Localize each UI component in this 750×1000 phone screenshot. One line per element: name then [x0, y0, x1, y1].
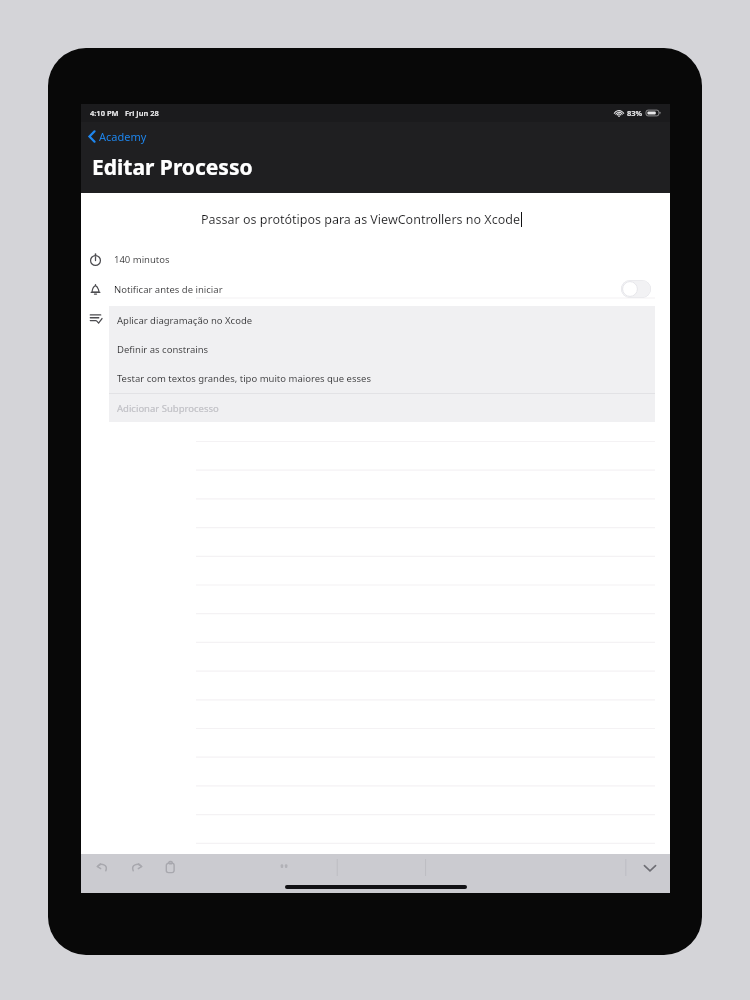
staticText: 83%	[627, 108, 643, 118]
button[interactable]: Definir as constrains	[109, 335, 655, 364]
button[interactable]: Notify before start toggle	[621, 280, 651, 298]
staticText: Editar Processo	[92, 153, 253, 182]
staticText: Aplicar diagramação no Xcode	[117, 314, 253, 327]
button[interactable]: Adicionar Subprocesso	[109, 394, 655, 422]
other: Notification	[89, 283, 102, 296]
staticText: 4:10 PM	[90, 108, 119, 118]
button[interactable]: Undo	[93, 858, 111, 876]
button[interactable]: Redo	[127, 858, 145, 876]
staticText: Definir as constrains	[117, 343, 209, 356]
button[interactable]: Quote	[279, 863, 293, 873]
staticText: Adicionar Subprocesso	[117, 402, 219, 415]
button[interactable]: Academy	[81, 126, 157, 147]
staticText: Passar os protótipos para as ViewControl…	[201, 211, 520, 228]
button[interactable]: Hide keyboard	[642, 860, 658, 876]
button[interactable]: Testar com textos grandes, tipo muito ma…	[109, 364, 655, 393]
other: Duration	[89, 253, 102, 266]
staticText: Fri Jun 28	[125, 108, 159, 118]
other: Subprocesses	[89, 311, 102, 324]
staticText: Academy	[99, 129, 147, 144]
button[interactable]: Aplicar diagramação no Xcode	[109, 306, 655, 335]
staticText: 140 minutos	[114, 253, 170, 266]
button[interactable]: Notification	[81, 275, 670, 303]
button[interactable]: Paste	[161, 858, 179, 876]
button[interactable]: Passar os protótipos para as ViewControl…	[81, 207, 670, 232]
button[interactable]: Duration	[81, 246, 670, 272]
staticText: Notificar antes de iniciar	[114, 283, 223, 296]
staticText: Testar com textos grandes, tipo muito ma…	[117, 372, 371, 385]
